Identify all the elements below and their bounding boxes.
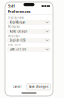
staticText: Acme Design [9,30,27,33]
staticText: Save changes [29,85,48,88]
staticText: 9:41 [8,3,15,9]
button[interactable]: Language [5,34,53,43]
staticText: Time zone [7,43,21,46]
staticText: English (US) [9,39,25,42]
staticText: Preferences [7,9,30,14]
button[interactable]: Time zone [5,43,53,52]
button[interactable]: Save changes [26,83,50,90]
staticText: Language [7,34,20,37]
staticText: GMT +01:00 [9,48,26,51]
staticText: Display name [7,16,24,19]
staticText: Workspace [7,25,20,28]
button[interactable]: Workspace [5,25,53,34]
staticText: Alex Morgan [9,21,25,24]
staticText: Cancel [12,85,21,88]
button[interactable]: Cancel [10,84,23,90]
button[interactable]: Display name [5,16,53,25]
